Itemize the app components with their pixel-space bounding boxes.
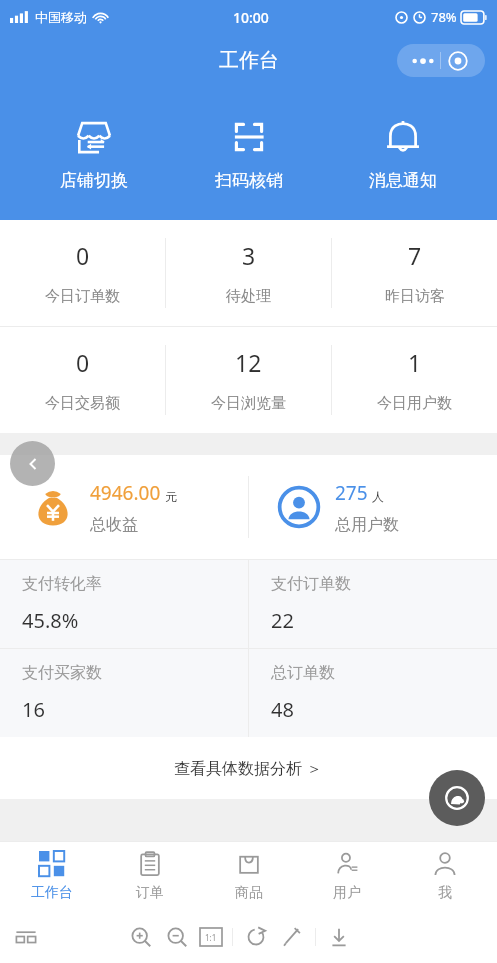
staticText: 今日用户数 — [377, 394, 452, 413]
button[interactable]: 1 — [332, 327, 497, 433]
staticText: 查看具体数据分析 ＞ — [174, 757, 323, 779]
staticText: 22 — [271, 607, 294, 634]
staticText: 扫码核销 — [215, 170, 283, 191]
staticText: 10:00 — [233, 8, 269, 27]
staticText: 工作台 — [219, 48, 279, 73]
staticText: 支付转化率 — [22, 574, 102, 594]
button[interactable]: 0 — [0, 220, 165, 326]
staticText: 0 — [76, 347, 90, 378]
button[interactable]: 消息通知 — [343, 110, 463, 197]
staticText: 店铺切换 — [60, 170, 128, 191]
staticText: 4946.00 — [90, 480, 161, 506]
staticText: 78% — [431, 8, 457, 26]
button[interactable]: 4946.00 — [0, 455, 248, 559]
button[interactable]: 用户 — [301, 841, 393, 911]
button[interactable]: 工作台 — [6, 841, 98, 911]
staticText: 工作台 — [31, 884, 73, 902]
staticText: 45.8% — [22, 607, 79, 634]
button[interactable]: Layout — [14, 925, 38, 949]
button[interactable]: 支付订单数 — [249, 560, 497, 648]
staticText: 12 — [235, 347, 262, 378]
staticText: 订单 — [136, 884, 164, 902]
button[interactable]: Edit — [281, 926, 303, 948]
button[interactable]: 扫码核销 — [189, 110, 309, 197]
button[interactable]: 275 — [249, 455, 497, 559]
button[interactable]: Actual size — [200, 928, 222, 946]
staticText: 今日订单数 — [45, 287, 120, 306]
staticText: 48 — [271, 696, 294, 723]
button[interactable]: 3 — [166, 220, 331, 326]
button[interactable]: 订单 — [104, 841, 196, 911]
staticText: 支付订单数 — [271, 574, 351, 594]
staticText: 总用户数 — [335, 515, 399, 535]
button[interactable]: 总订单数 — [249, 649, 497, 737]
button[interactable]: 0 — [0, 327, 165, 433]
staticText: 支付买家数 — [22, 663, 102, 683]
button[interactable]: Back — [10, 441, 55, 486]
button[interactable]: 支付买家数 — [0, 649, 248, 737]
staticText: 用户 — [333, 884, 361, 902]
button[interactable]: Zoom in — [130, 926, 152, 948]
staticText: 0 — [76, 240, 90, 271]
button[interactable]: Customer service — [429, 770, 485, 826]
button[interactable]: Menu — [397, 44, 485, 77]
staticText: 元 — [165, 489, 177, 504]
staticText: 总订单数 — [271, 663, 335, 683]
staticText: 中国移动 — [35, 9, 87, 25]
staticText: 总收益 — [90, 515, 138, 535]
button[interactable]: 支付转化率 — [0, 560, 248, 648]
staticText: 1:1 — [205, 932, 217, 943]
staticText: 今日浏览量 — [211, 394, 286, 413]
staticText: 我 — [438, 884, 452, 902]
staticText: 7 — [408, 240, 422, 271]
button[interactable]: 查看具体数据分析 ＞ — [0, 737, 497, 799]
staticText: 商品 — [235, 884, 263, 902]
staticText: 16 — [22, 696, 45, 723]
staticText: 3 — [242, 240, 256, 271]
staticText: 今日交易额 — [45, 394, 120, 413]
button[interactable]: 7 — [332, 220, 497, 326]
button[interactable]: 商品 — [203, 841, 295, 911]
staticText: 1 — [408, 347, 422, 378]
button[interactable]: 我 — [399, 841, 491, 911]
staticText: 人 — [372, 489, 384, 504]
staticText: 昨日访客 — [385, 287, 445, 306]
button[interactable]: Download — [328, 926, 350, 948]
staticText: 消息通知 — [369, 170, 437, 191]
staticText: 待处理 — [226, 287, 271, 306]
button[interactable]: Zoom out — [166, 926, 188, 948]
staticText: 275 — [335, 480, 368, 506]
button[interactable]: 店铺切换 — [34, 110, 154, 197]
button[interactable]: Rotate — [245, 926, 267, 948]
button[interactable]: 12 — [166, 327, 331, 433]
